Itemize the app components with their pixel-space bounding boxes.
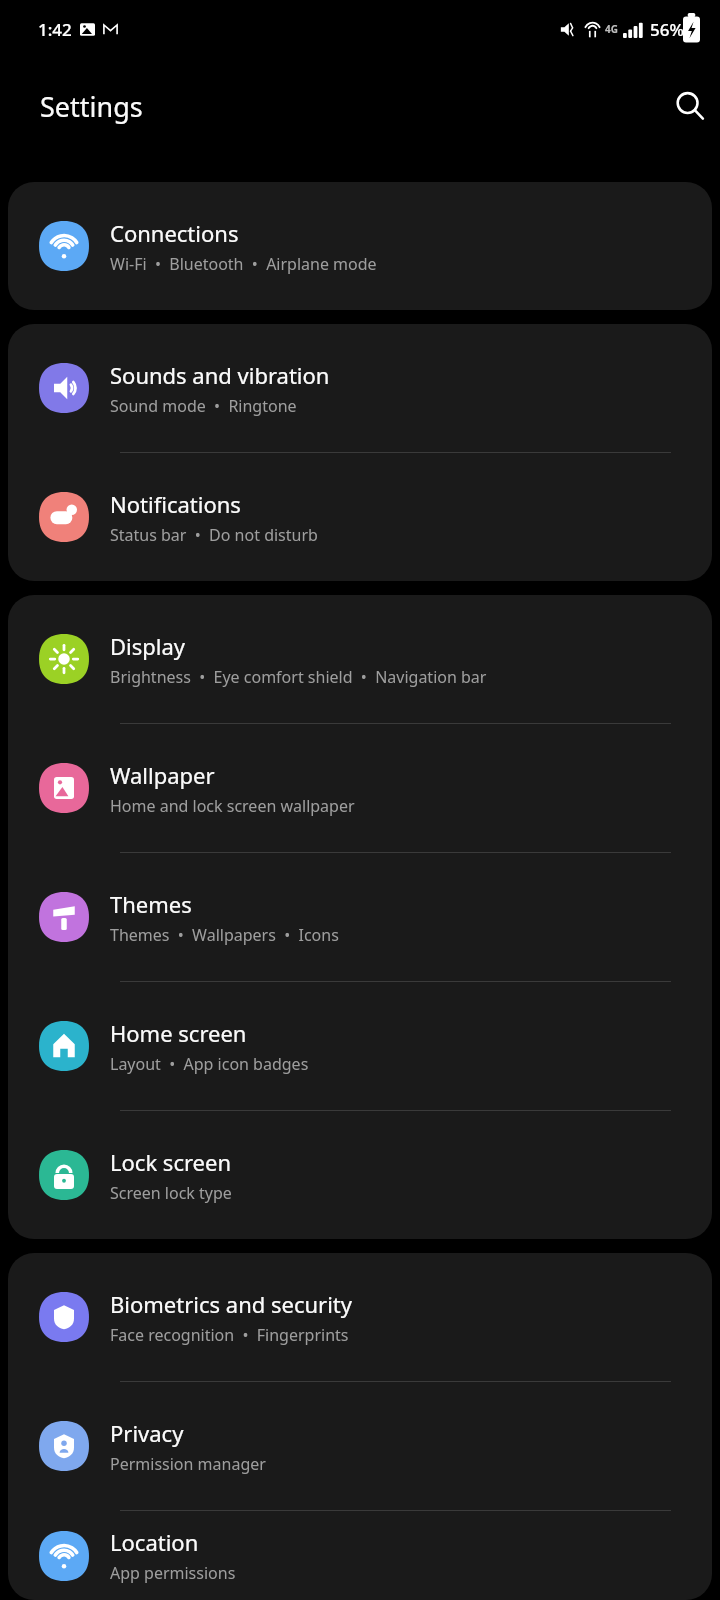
- button[interactable]: Biometrics and security: [8, 1253, 712, 1381]
- button[interactable]: Location: [8, 1511, 712, 1600]
- staticText: 56%: [650, 18, 684, 41]
- staticText: Connections: [110, 218, 239, 248]
- staticText: Wi-Fi • Bluetooth • Airplane mode: [110, 253, 377, 275]
- staticText: Settings: [40, 88, 143, 125]
- staticText: App permissions: [110, 1562, 236, 1584]
- staticText: Permission manager: [110, 1453, 266, 1475]
- staticText: Themes: [110, 889, 192, 919]
- button[interactable]: Wallpaper: [8, 724, 712, 852]
- staticText: Face recognition • Fingerprints: [110, 1324, 349, 1346]
- button[interactable]: Search: [660, 76, 720, 136]
- staticText: Layout • App icon badges: [110, 1053, 309, 1075]
- staticText: Home and lock screen wallpaper: [110, 795, 355, 817]
- button[interactable]: Display: [8, 595, 712, 723]
- button[interactable]: Connections: [8, 182, 712, 310]
- button[interactable]: Privacy: [8, 1382, 712, 1510]
- staticText: Notifications: [110, 489, 241, 519]
- staticText: Wallpaper: [110, 760, 215, 790]
- button[interactable]: Notifications: [8, 453, 712, 581]
- button[interactable]: Sounds and vibration: [8, 324, 712, 452]
- staticText: Biometrics and security: [110, 1289, 353, 1319]
- staticText: Sound mode • Ringtone: [110, 395, 297, 417]
- staticText: Brightness • Eye comfort shield • Naviga…: [110, 666, 487, 688]
- staticText: Location: [110, 1527, 199, 1557]
- staticText: Display: [110, 631, 186, 661]
- button[interactable]: Themes: [8, 853, 712, 981]
- button[interactable]: Lock screen: [8, 1111, 712, 1239]
- staticText: Screen lock type: [110, 1182, 232, 1204]
- staticText: 1:42: [38, 18, 72, 41]
- staticText: Privacy: [110, 1418, 184, 1448]
- staticText: Sounds and vibration: [110, 360, 330, 390]
- staticText: Lock screen: [110, 1147, 232, 1177]
- staticText: Home screen: [110, 1018, 247, 1048]
- staticText: Themes • Wallpapers • Icons: [110, 924, 339, 946]
- button[interactable]: Home screen: [8, 982, 712, 1110]
- staticText: Status bar • Do not disturb: [110, 524, 318, 546]
- staticText: 4G: [605, 22, 618, 36]
